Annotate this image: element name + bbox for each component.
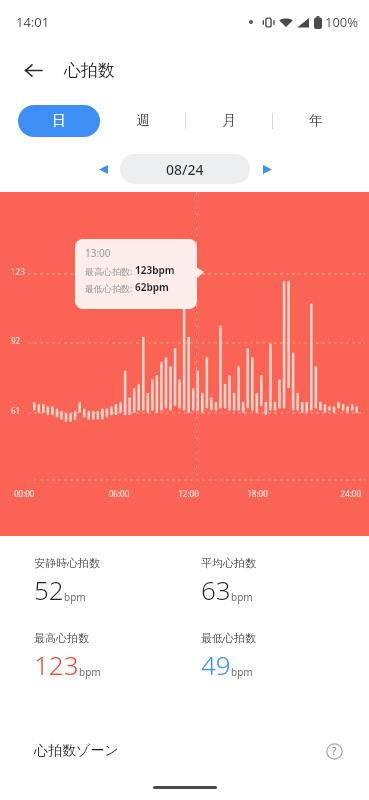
button[interactable]: 08/24 [120, 154, 250, 184]
button[interactable]: 月 [186, 105, 272, 137]
button[interactable]: Next day [254, 156, 280, 182]
staticText: 心拍数 [64, 60, 115, 81]
staticText: 最高心拍数 [34, 631, 89, 645]
staticText: 100% [325, 13, 359, 31]
staticText: 最高心拍数: [85, 265, 135, 277]
staticText: 日 [52, 112, 66, 130]
staticText: 00:00 [14, 488, 84, 499]
staticText: 123 [34, 647, 79, 682]
staticText: 最低心拍数: [85, 282, 135, 294]
staticText: bpm [64, 590, 86, 604]
staticText: 06:00 [84, 488, 154, 499]
staticText: bpm [231, 590, 253, 604]
button[interactable]: Back [16, 53, 50, 87]
staticText: 63 [201, 572, 231, 607]
button[interactable]: Previous day [90, 156, 116, 182]
staticText: 13:00 [85, 246, 111, 260]
button[interactable]: 週 [100, 105, 185, 137]
staticText: 52 [34, 572, 64, 607]
staticText: 平均心拍数 [201, 556, 256, 570]
button[interactable]: Help [321, 738, 347, 764]
staticText: 62bpm [135, 280, 169, 294]
staticText: 年 [309, 112, 323, 130]
staticText: 安静時心拍数 [34, 556, 100, 570]
button[interactable]: 年 [273, 105, 359, 137]
button[interactable]: 日 [18, 105, 100, 137]
staticText: bpm [231, 665, 253, 679]
staticText: 123 [11, 266, 25, 277]
staticText: 92 [11, 335, 21, 346]
staticText: 49 [201, 647, 231, 682]
staticText: 12:00 [154, 488, 223, 499]
staticText: 14:01 [16, 13, 50, 31]
staticText: 61 [11, 405, 21, 416]
staticText: 最低心拍数 [201, 631, 256, 645]
staticText: bpm [79, 665, 101, 679]
staticText: 08/24 [166, 160, 204, 179]
staticText: 心拍数ゾーン [34, 742, 119, 760]
staticText: 24:00 [292, 488, 361, 499]
staticText: 週 [136, 112, 150, 130]
staticText: 123bpm [135, 263, 175, 277]
staticText: 18:00 [223, 488, 292, 499]
staticText: 月 [222, 112, 236, 130]
staticText: ? [332, 744, 337, 758]
